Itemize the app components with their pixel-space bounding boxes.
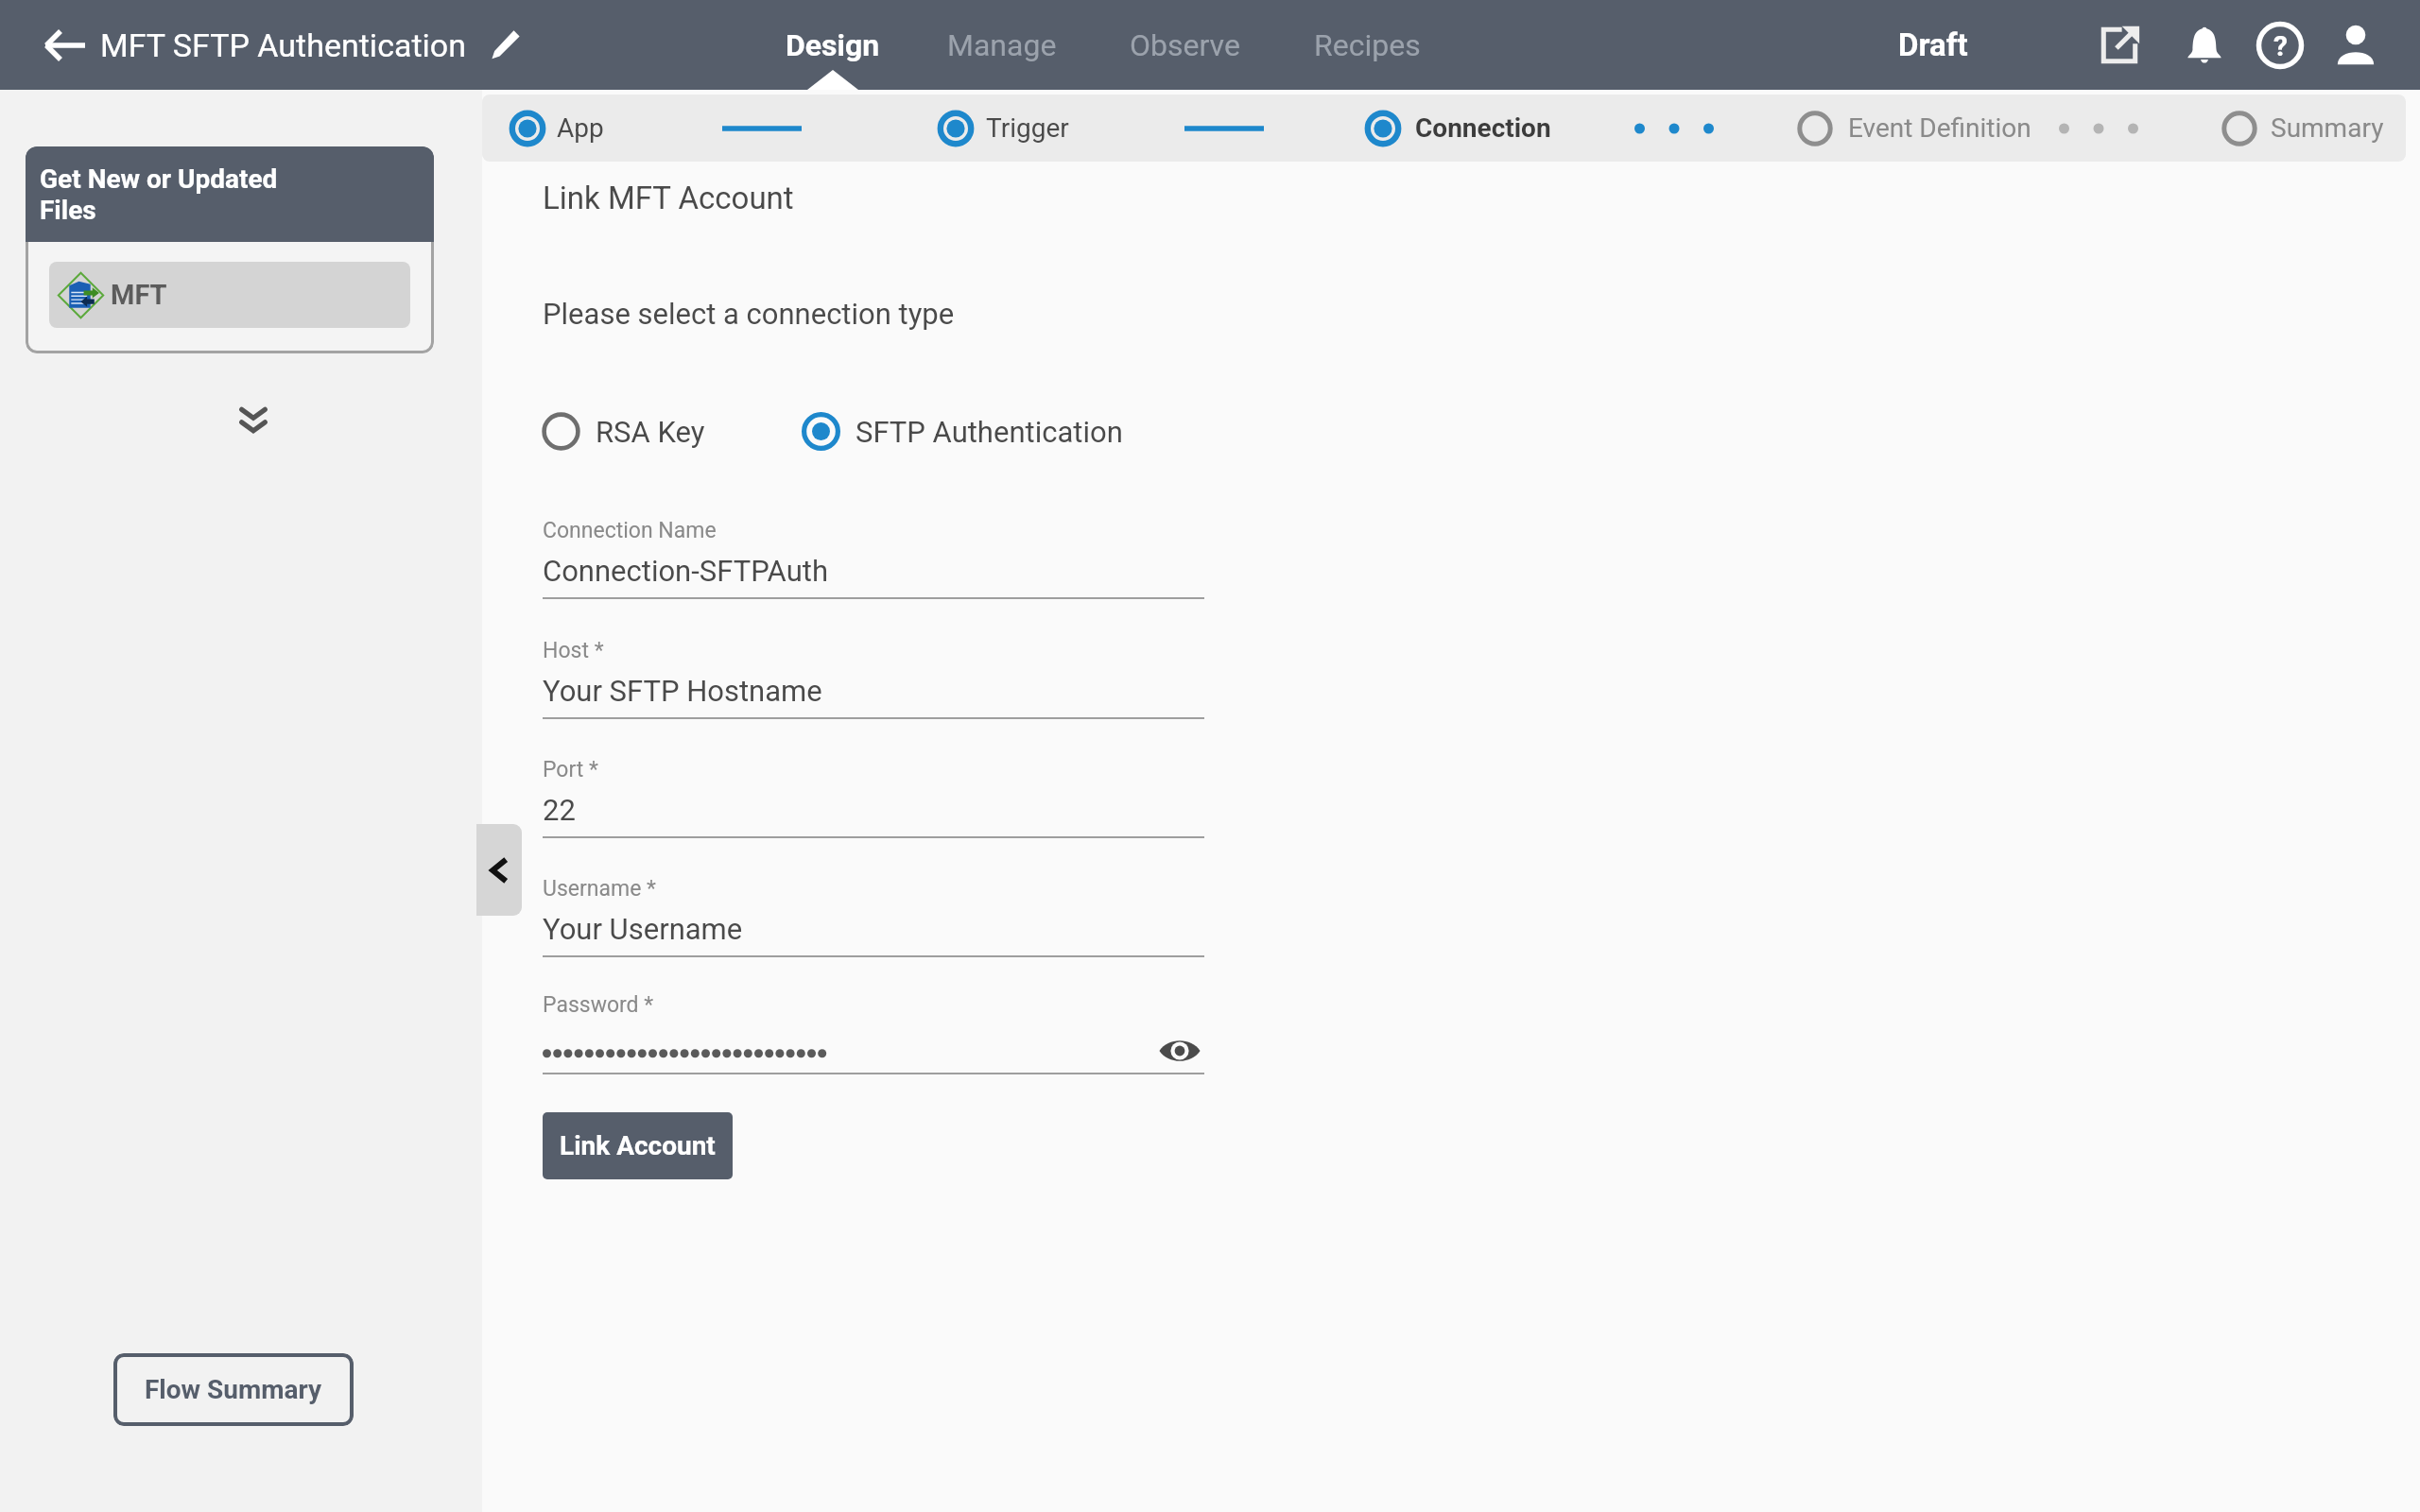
staticText: Password * [543,992,654,1018]
staticText: Your Username [543,912,743,946]
button[interactable]: Summary [2271,94,2384,162]
button[interactable]: Step Event Definition [1796,110,1834,147]
staticText: 22 [543,793,576,827]
staticText: Link Account [560,1130,716,1161]
button[interactable]: App [557,94,604,162]
button[interactable]: Step Trigger [937,110,975,147]
staticText: Link MFT Account [543,180,794,216]
staticText: MFT SFTP Authentication [100,26,466,64]
button[interactable]: Help [2250,15,2310,76]
button[interactable]: Observe [1099,0,1270,90]
button[interactable]: Step Summary [2221,110,2258,147]
button[interactable]: Flow Summary [113,1353,354,1426]
button[interactable]: Username * [543,873,1204,957]
staticText: Get New or Updated Files [40,163,302,226]
staticText: Manage [947,27,1057,63]
staticText: App [557,112,604,144]
button[interactable]: Connection [1415,94,1551,162]
staticText: Recipes [1314,27,1421,63]
button[interactable]: Add step [225,392,282,449]
button[interactable]: Open in new window [2089,15,2150,76]
button[interactable]: Manage [921,0,1083,90]
button[interactable]: Back [38,18,93,73]
button[interactable]: Edit name [481,22,528,69]
staticText: Connection-SFTPAuth [543,554,828,588]
button[interactable]: Design [761,0,905,90]
button[interactable]: Account [2325,15,2386,76]
button[interactable]: RSA Key [542,408,705,455]
button[interactable]: Trigger [986,94,1069,162]
staticText: Host * [543,638,604,663]
staticText: Summary [2271,112,2384,144]
staticText: RSA Key [596,415,705,449]
staticText: Connection [1415,112,1551,144]
staticText: MFT [111,279,167,311]
staticText: Flow Summary [145,1374,322,1405]
button[interactable]: Collapse panel [476,824,522,916]
staticText: Design [786,27,880,63]
button[interactable]: Event Definition [1848,94,2031,162]
staticText: Connection Name [543,518,717,543]
button[interactable]: MFT [49,262,410,328]
staticText: Trigger [986,112,1069,144]
button[interactable]: Port * [543,754,1204,838]
button[interactable]: Connection Name [543,515,1204,599]
staticText: Please select a connection type [543,297,955,331]
button[interactable]: Recipes [1286,0,1448,90]
staticText: Username * [543,876,656,902]
button[interactable]: Link Account [543,1112,733,1179]
button[interactable]: Notifications [2174,15,2235,76]
staticText: Observe [1130,27,1240,63]
button[interactable]: Get New or Updated Files [26,146,434,353]
staticText: Event Definition [1848,112,2031,144]
staticText: Your SFTP Hostname [543,674,822,708]
button[interactable]: Host * [543,635,1204,719]
button[interactable]: SFTP Authentication [802,408,1123,455]
button[interactable]: Step App [509,110,546,147]
button[interactable]: Show password [1155,1029,1204,1073]
staticText: Port * [543,757,598,782]
button[interactable]: Step Connection [1364,110,1402,147]
staticText: Draft [1898,26,1968,63]
staticText: SFTP Authentication [856,415,1123,449]
staticText: ? [2273,29,2288,62]
